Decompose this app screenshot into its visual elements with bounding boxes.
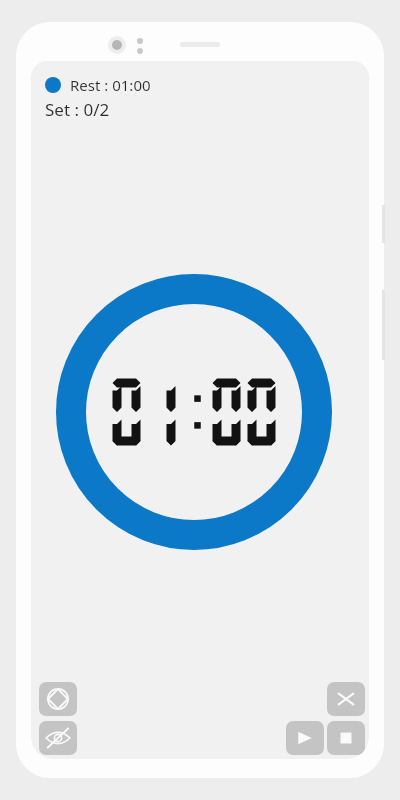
button[interactable]: Timer [56,274,332,550]
button[interactable]: Start [286,721,324,755]
button[interactable]: Close [327,682,365,716]
staticText: Set : 0/2 [45,98,110,121]
button[interactable]: Hide display [39,721,77,755]
button[interactable]: Stop [327,721,365,755]
staticText: Rest : 01:00 [70,75,151,95]
button[interactable]: Rotate screen [39,682,77,716]
